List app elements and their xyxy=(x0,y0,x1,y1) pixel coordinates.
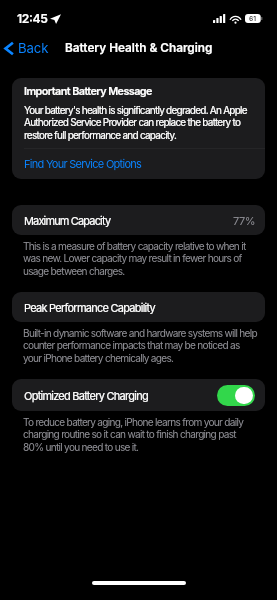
staticText: 61 xyxy=(249,15,257,23)
button[interactable]: Peak Performance Capability xyxy=(12,292,265,322)
staticText: Built-in dynamic software and hardware s… xyxy=(23,327,257,365)
staticText: To reduce battery aging, iPhone learns f… xyxy=(23,416,244,454)
staticText: Your battery's health is significantly d… xyxy=(24,104,247,142)
staticText: Back xyxy=(18,40,49,56)
staticText: Peak Performance Capability xyxy=(24,301,155,314)
staticText: Optimized Battery Charging xyxy=(24,389,148,402)
staticText: 12:45 xyxy=(17,11,48,26)
staticText: 77% xyxy=(233,214,256,227)
button[interactable]: Maximum Capacity xyxy=(12,205,265,235)
button[interactable]: Back xyxy=(0,37,57,59)
button[interactable]: Find Your Service Options xyxy=(12,149,265,179)
staticText: Important Battery Message xyxy=(24,85,152,98)
staticText: Maximum Capacity xyxy=(24,214,111,227)
staticText: Find Your Service Options xyxy=(24,157,142,170)
staticText: Battery Health & Charging xyxy=(65,41,213,55)
button[interactable]: Optimized Battery Charging toggle xyxy=(217,385,255,406)
staticText: This is a measure of battery capacity re… xyxy=(23,240,246,278)
